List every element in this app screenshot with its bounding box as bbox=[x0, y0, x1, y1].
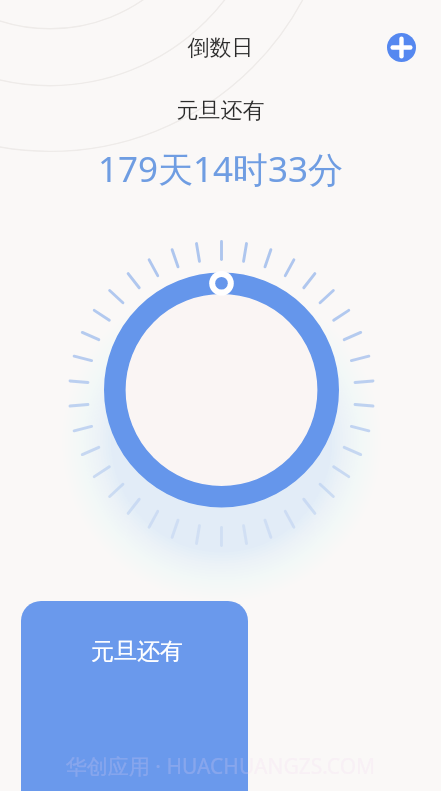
staticText: 元旦还有 bbox=[0, 97, 441, 125]
staticText: 倒数日 bbox=[0, 34, 441, 62]
staticText: 华创应用 · HUACHUANGZS.COM bbox=[0, 752, 441, 781]
staticText: 元旦还有 bbox=[91, 637, 183, 666]
button[interactable]: 元旦还有 bbox=[21, 601, 248, 791]
button[interactable]: Add countdown bbox=[387, 33, 416, 62]
staticText: 179天14时33分 bbox=[0, 145, 441, 193]
